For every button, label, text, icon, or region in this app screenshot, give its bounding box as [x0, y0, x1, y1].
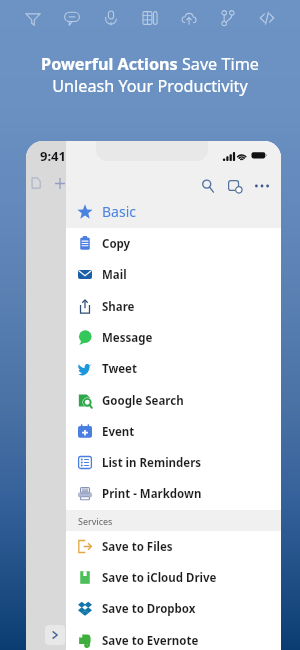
staticText: Save to iCloud Drive [102, 570, 217, 586]
button[interactable]: New document [29, 176, 43, 190]
button[interactable]: Share [66, 291, 281, 322]
button[interactable]: Message [66, 322, 281, 353]
button[interactable]: Microphone [100, 7, 122, 29]
button[interactable]: Google Search [66, 385, 281, 416]
button[interactable]: Comment [61, 7, 83, 29]
button[interactable]: Tweet [66, 353, 281, 384]
button[interactable]: Save to Dropbox [66, 593, 281, 624]
staticText: List in Reminders [102, 455, 202, 471]
staticText: Google Search [102, 393, 184, 409]
staticText: Basic [102, 202, 136, 221]
button[interactable]: Filter [22, 7, 44, 29]
staticText: Save to Files [102, 539, 173, 555]
staticText: Message [102, 330, 153, 346]
button[interactable]: Basic [66, 195, 281, 228]
staticText: Share [102, 299, 135, 315]
button[interactable]: Search [200, 178, 216, 194]
button[interactable]: List in Reminders [66, 447, 281, 478]
staticText: Mail [102, 267, 127, 283]
button[interactable]: Save to Files [66, 531, 281, 562]
button[interactable]: Table [139, 7, 161, 29]
button[interactable]: More options [254, 178, 270, 194]
button[interactable]: Upload [178, 7, 200, 29]
button[interactable]: Add [54, 177, 66, 190]
button[interactable]: Event [66, 416, 281, 447]
staticText: Powerful Actions Save Time [41, 53, 259, 75]
button[interactable]: Branch [217, 7, 239, 29]
staticText: Services [78, 515, 113, 527]
button[interactable]: Mail [66, 259, 281, 290]
button[interactable]: Save to iCloud Drive [66, 562, 281, 593]
staticText: Unleash Your Productivity [52, 75, 248, 97]
staticText: Event [102, 424, 135, 440]
button[interactable]: Code [256, 7, 278, 29]
button[interactable]: Print - Markdown [66, 478, 281, 509]
staticText: Tweet [102, 361, 137, 377]
button[interactable]: Expand [45, 625, 65, 645]
button[interactable]: Copy [66, 228, 281, 259]
staticText: Print - Markdown [102, 486, 202, 502]
staticText: 9:41 [40, 147, 66, 165]
staticText: Save to Evernote [102, 633, 199, 649]
staticText: Copy [102, 236, 131, 252]
staticText: Save to Dropbox [102, 601, 196, 617]
button[interactable]: Save to Evernote [66, 625, 281, 650]
button[interactable]: Share [227, 178, 243, 194]
